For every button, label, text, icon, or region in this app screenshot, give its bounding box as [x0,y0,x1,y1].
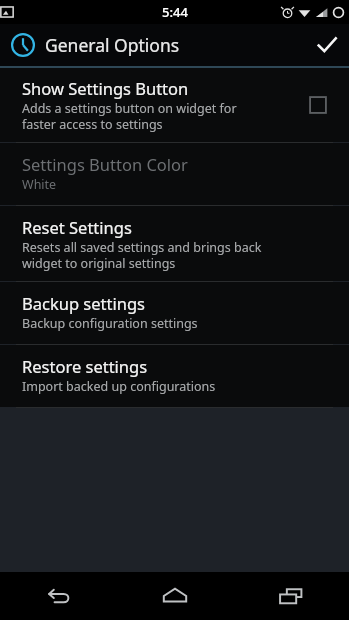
staticText: Restore settings [22,355,148,377]
button[interactable]: Show settings button checkbox [307,94,329,116]
button[interactable]: Backup settings [0,282,349,344]
button[interactable]: Settings Button Color [0,143,349,205]
staticText: 5:44 [162,3,188,21]
button[interactable]: Show Settings Button [0,68,349,142]
staticText: Resets all saved settings and brings bac… [22,239,262,271]
staticText: Settings Button Color [22,153,188,175]
staticText: Backup settings [22,292,145,314]
staticText: Reset Settings [22,216,132,238]
button[interactable]: Reset Settings [0,206,349,281]
button[interactable]: Home [117,572,233,620]
button[interactable]: Recent apps [233,572,349,620]
button[interactable]: Back [0,572,117,620]
staticText: White [22,176,57,193]
staticText: Adds a settings button on widget for fas… [22,100,237,132]
staticText: Show Settings Button [22,77,189,99]
button[interactable]: Restore settings [0,345,349,407]
staticText: Backup configuration settings [22,315,198,332]
staticText: General Options [45,33,305,57]
button[interactable]: Done [305,24,349,66]
staticText: Import backed up configurations [22,378,216,395]
